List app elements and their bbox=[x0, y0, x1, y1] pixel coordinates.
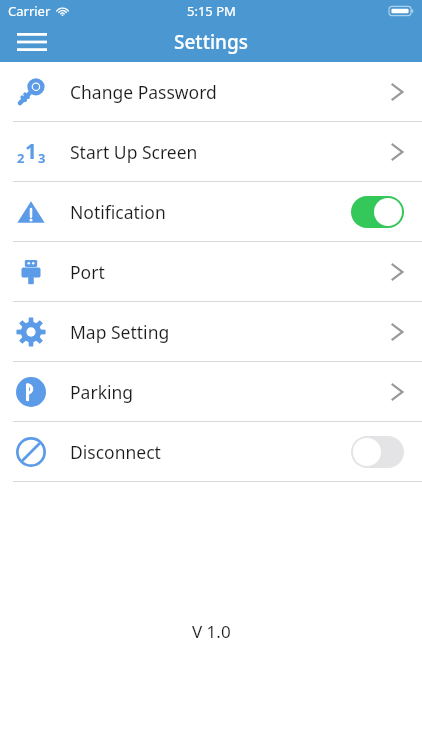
staticText: Start Up Screen bbox=[70, 140, 391, 164]
staticText: 1 bbox=[25, 137, 38, 166]
button[interactable]: Disconnect bbox=[0, 422, 422, 481]
staticText: 3 bbox=[38, 149, 46, 167]
staticText: V 1.0 bbox=[192, 620, 231, 643]
button[interactable]: Change Password bbox=[0, 62, 422, 121]
button[interactable]: Parking bbox=[0, 362, 422, 421]
button[interactable]: On bbox=[351, 196, 404, 228]
button[interactable]: 2 bbox=[0, 122, 422, 181]
staticText: Carrier bbox=[8, 2, 51, 20]
staticText: Change Password bbox=[70, 80, 391, 104]
button[interactable]: Notification bbox=[0, 182, 422, 241]
staticText: Map Setting bbox=[70, 320, 391, 344]
staticText: 2 bbox=[17, 149, 25, 167]
button[interactable]: Port bbox=[0, 242, 422, 301]
staticText: 5:15 PM bbox=[187, 2, 236, 20]
staticText: Settings bbox=[174, 29, 248, 55]
staticText: Port bbox=[70, 260, 391, 284]
button[interactable]: Map Setting bbox=[0, 302, 422, 361]
button[interactable]: Off bbox=[351, 436, 404, 468]
staticText: Notification bbox=[70, 200, 351, 224]
staticText: Disconnect bbox=[70, 440, 351, 464]
button[interactable]: Menu bbox=[10, 22, 54, 62]
staticText: Parking bbox=[70, 380, 391, 404]
